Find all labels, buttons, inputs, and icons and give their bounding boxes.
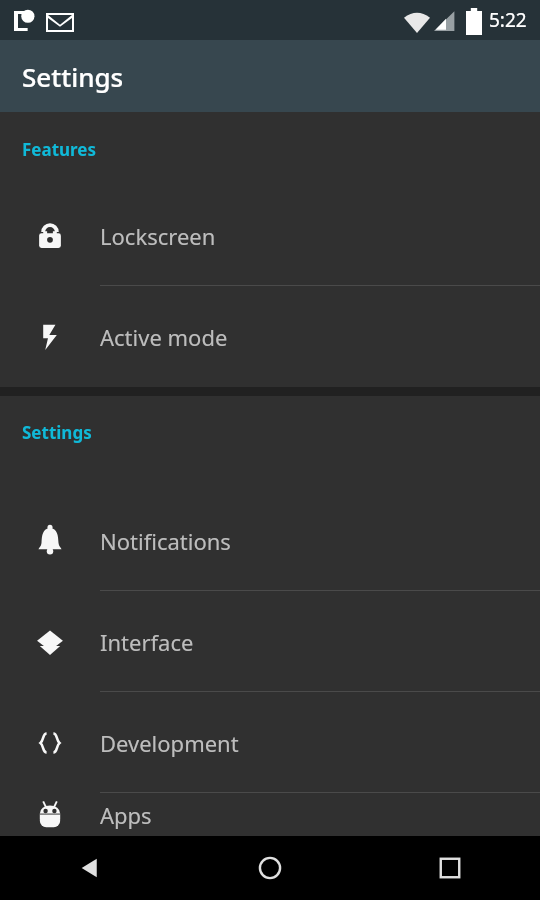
button[interactable]: Lockscreen bbox=[0, 185, 540, 286]
button[interactable]: Apps bbox=[0, 793, 540, 836]
staticText: Active mode bbox=[100, 322, 228, 352]
button[interactable]: Development bbox=[0, 692, 540, 793]
button[interactable]: Home bbox=[180, 836, 360, 900]
staticText: Settings bbox=[22, 421, 92, 444]
button[interactable]: Active mode bbox=[0, 286, 540, 387]
staticText: Lockscreen bbox=[100, 221, 216, 251]
button[interactable]: Notifications bbox=[0, 490, 540, 591]
staticText: 5:22 bbox=[489, 7, 527, 33]
staticText: Development bbox=[100, 728, 239, 758]
staticText: Features bbox=[22, 138, 97, 161]
staticText: Notifications bbox=[100, 526, 231, 556]
button[interactable]: Recent apps bbox=[360, 836, 540, 900]
staticText: Interface bbox=[100, 627, 194, 657]
button[interactable]: Interface bbox=[0, 591, 540, 692]
button[interactable]: Back bbox=[0, 836, 180, 900]
staticText: Apps bbox=[100, 800, 152, 830]
staticText: Settings bbox=[22, 59, 124, 94]
